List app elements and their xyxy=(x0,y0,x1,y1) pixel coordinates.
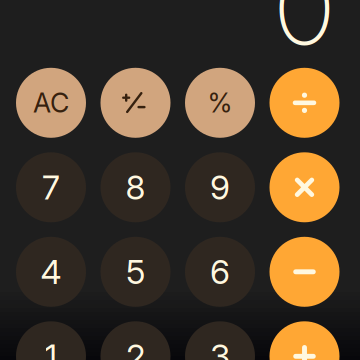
staticText: 8 xyxy=(125,167,145,207)
button[interactable]: Plus Minus xyxy=(100,68,170,138)
staticText: 7 xyxy=(42,167,60,207)
button[interactable]: 7 xyxy=(16,152,86,222)
button[interactable]: % xyxy=(185,68,255,138)
staticText: 5 xyxy=(126,252,145,292)
button[interactable]: 1 xyxy=(16,321,86,360)
button[interactable]: 8 xyxy=(100,152,170,222)
staticText: 2 xyxy=(126,336,145,360)
button[interactable]: 6 xyxy=(185,237,255,307)
staticText: 6 xyxy=(210,252,230,292)
staticText: 3 xyxy=(210,336,230,360)
button[interactable]: Divide xyxy=(269,68,339,138)
button[interactable]: 2 xyxy=(100,321,170,360)
staticText: AC xyxy=(33,87,69,119)
staticText: % xyxy=(207,87,232,119)
button[interactable]: AC xyxy=(16,68,86,138)
staticText: 1 xyxy=(44,336,57,360)
button[interactable]: Add xyxy=(269,321,339,360)
button[interactable]: 5 xyxy=(100,237,170,307)
button[interactable]: 3 xyxy=(185,321,255,360)
staticText: 0 xyxy=(276,0,333,68)
button[interactable]: Multiply xyxy=(269,152,339,222)
staticText: 4 xyxy=(40,252,61,292)
staticText: 9 xyxy=(210,167,230,207)
button[interactable]: Subtract xyxy=(269,237,339,307)
button[interactable]: 4 xyxy=(16,237,86,307)
button[interactable]: 9 xyxy=(185,152,255,222)
